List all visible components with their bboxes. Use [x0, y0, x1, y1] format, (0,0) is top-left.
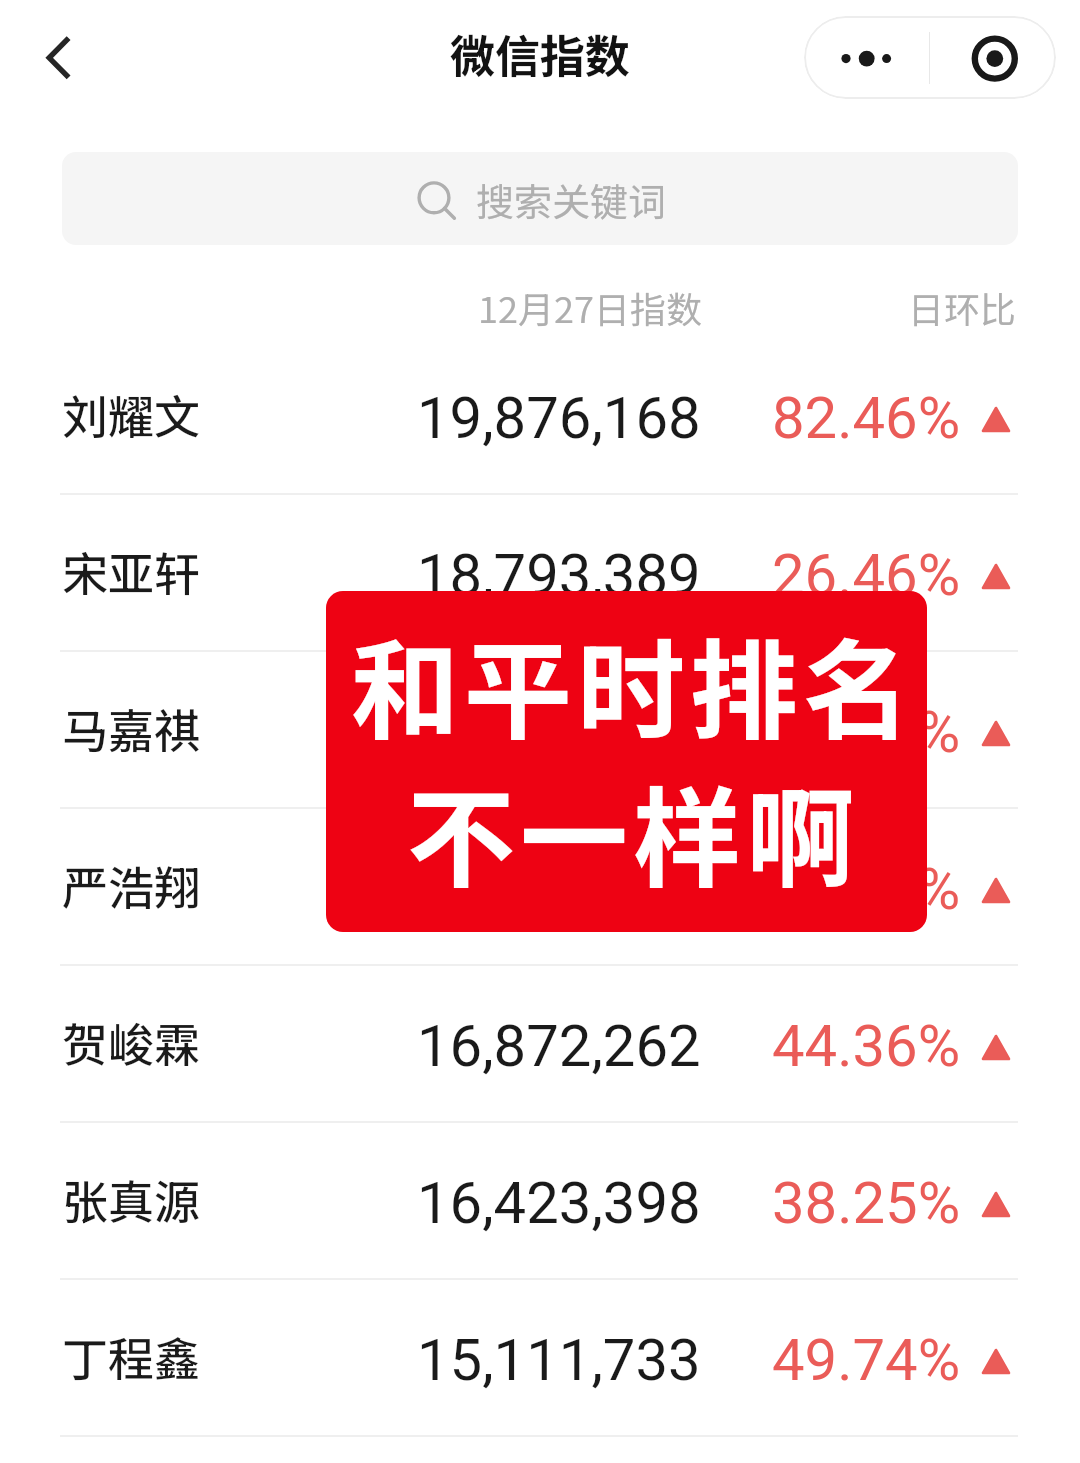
staticText: 宋亚轩 — [62, 538, 200, 605]
staticText: 搜索关键词 — [476, 172, 667, 227]
staticText: 82.46% — [772, 384, 961, 452]
staticText: 刘耀文 — [62, 381, 200, 448]
button[interactable]: Close mini program — [931, 16, 1056, 99]
staticText: 17,102,884 — [417, 855, 701, 923]
staticText: 和平时排名 — [351, 605, 917, 761]
button[interactable]: Back — [16, 22, 88, 94]
staticText: 15,111,733 — [417, 1326, 701, 1394]
staticText: 微信指数 — [450, 21, 631, 86]
button[interactable]: 严浩翔 — [0, 807, 1080, 964]
staticText: 38.25% — [772, 1169, 961, 1237]
staticText: 27.55% — [772, 855, 961, 923]
staticText: 16,872,262 — [417, 1012, 701, 1080]
staticText: 17,551,024 — [417, 698, 701, 766]
staticText: 12月27日指数 — [478, 281, 702, 333]
staticText: 49.74% — [772, 1326, 961, 1394]
staticText: 19,876,168 — [417, 384, 701, 452]
staticText: 张真源 — [62, 1166, 200, 1233]
staticText: 18,793,389 — [417, 541, 701, 609]
staticText: 31.08% — [772, 698, 961, 766]
staticText: 44.36% — [772, 1012, 961, 1080]
staticText: 不一样啊 — [407, 753, 860, 909]
staticText: 16,423,398 — [417, 1169, 701, 1237]
button[interactable]: 宋亚轩 — [0, 493, 1080, 650]
button[interactable]: 贺峻霖 — [0, 964, 1080, 1121]
staticText: 贺峻霖 — [62, 1009, 200, 1076]
button[interactable]: 丁程鑫 — [0, 1278, 1080, 1435]
staticText: 26.46% — [772, 541, 961, 609]
staticText: 日环比 — [908, 281, 1017, 333]
button[interactable]: 搜索关键词 — [62, 152, 1018, 245]
button[interactable]: 马嘉祺 — [0, 650, 1080, 807]
staticText: 马嘉祺 — [62, 695, 200, 762]
button[interactable]: 刘耀文 — [0, 336, 1080, 493]
staticText: 丁程鑫 — [62, 1323, 200, 1390]
staticText: 严浩翔 — [62, 852, 200, 919]
button[interactable]: 张真源 — [0, 1121, 1080, 1278]
button[interactable]: More options — [804, 16, 930, 99]
